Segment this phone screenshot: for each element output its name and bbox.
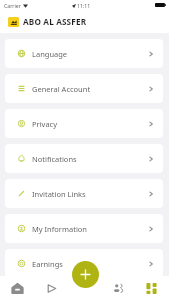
button[interactable]: Earnings xyxy=(5,249,163,278)
staticText: General Account xyxy=(32,84,91,94)
staticText: Language xyxy=(32,49,68,59)
staticText: My Information xyxy=(32,224,88,234)
button[interactable]: Contacts xyxy=(107,277,129,299)
button[interactable]: Privacy xyxy=(5,109,163,138)
button[interactable]: General Account xyxy=(5,74,163,103)
staticText: Notifications xyxy=(32,154,77,164)
staticText: Carrier xyxy=(4,2,21,9)
button[interactable]: My Information xyxy=(5,214,163,243)
button[interactable]: Dashboard xyxy=(140,277,162,299)
staticText: ABO AL ASSFER xyxy=(23,16,87,27)
button[interactable]: Language xyxy=(5,39,163,68)
staticText: 11:11 xyxy=(77,2,91,9)
button[interactable]: Notifications xyxy=(5,144,163,173)
staticText: Privacy xyxy=(32,119,58,129)
button[interactable]: Invitation Links xyxy=(5,179,163,208)
staticText: Invitation Links xyxy=(32,189,86,199)
button[interactable]: Add xyxy=(72,261,99,288)
button[interactable]: Videos xyxy=(40,277,62,299)
staticText: Earnings xyxy=(32,259,63,269)
button[interactable]: Home xyxy=(6,277,28,299)
